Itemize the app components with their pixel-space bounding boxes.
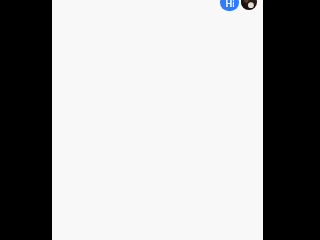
button[interactable]: Profile photo — [241, 0, 257, 10]
button[interactable]: Hi — [220, 0, 239, 11]
staticText: Hi — [225, 0, 235, 9]
